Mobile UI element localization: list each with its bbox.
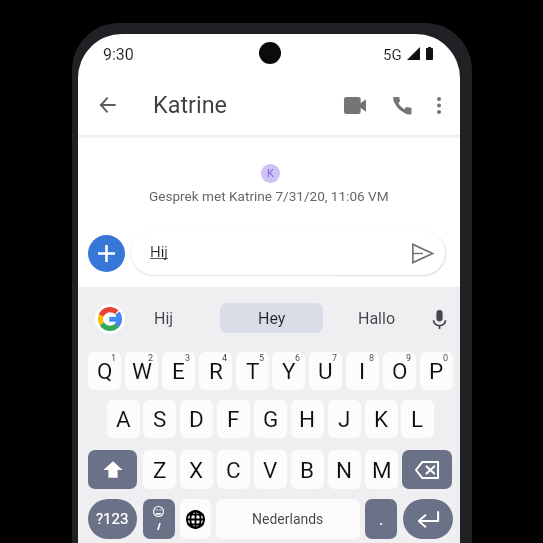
button[interactable]: Shift [88,450,137,489]
button[interactable]: M [365,450,398,489]
button[interactable]: C [217,450,250,489]
button[interactable]: O [383,352,416,390]
staticText: N [336,457,353,483]
staticText: I [359,358,366,384]
button[interactable]: Google [95,304,125,334]
staticText: Hey [258,309,286,328]
staticText: U [318,358,333,384]
button[interactable]: Nederlands [216,499,360,539]
staticText: C [226,457,241,483]
button[interactable]: P [420,352,453,390]
button[interactable]: Call [380,83,424,127]
staticText: 0 [443,353,449,364]
staticText: A [116,406,131,432]
button[interactable]: T [236,352,269,390]
button[interactable]: Video call [333,83,377,127]
staticText: 4 [222,353,228,364]
button[interactable]: G [254,400,287,438]
button[interactable]: N [328,450,361,489]
staticText: Z [153,457,167,483]
button[interactable]: Z [143,450,176,489]
staticText: Q [97,358,113,384]
staticText: O [392,358,408,384]
staticText: X [189,457,204,483]
button[interactable]: Hij [131,231,445,275]
button[interactable]: U [309,352,342,390]
button[interactable]: Hey [220,303,323,333]
staticText: Hij [150,243,168,261]
staticText: Hallo [358,309,396,328]
staticText: K [267,167,274,180]
staticText: 5G [383,46,402,64]
button[interactable]: Emoji [143,499,175,539]
staticText: R [209,358,223,384]
button[interactable]: Hij [134,303,194,333]
staticText: G [263,406,279,432]
staticText: 9:30 [103,45,134,64]
staticText: 2 [148,353,154,364]
staticText: 8 [369,353,375,364]
button[interactable]: Enter [403,499,453,539]
staticText: 3 [185,353,191,364]
button[interactable]: H [291,400,324,438]
staticText: D [189,406,204,432]
staticText: B [300,457,315,483]
staticText: J [338,406,351,432]
staticText: Nederlands [252,511,324,527]
staticText: F [227,406,240,432]
staticText: H [299,406,316,432]
staticText: 9 [406,353,412,364]
staticText: Y [282,358,296,384]
button[interactable]: Q [88,352,121,390]
button[interactable]: I [346,352,379,390]
button[interactable]: B [291,450,324,489]
staticText: . [379,509,384,529]
staticText: L [411,406,424,432]
button[interactable]: V [254,450,287,489]
button[interactable]: J [328,400,361,438]
staticText: Gesprek met Katrine 7/31/20, 11:06 VM [149,188,389,204]
staticText: 7 [332,353,338,364]
staticText: P [429,358,444,384]
staticText: 6 [295,353,301,364]
button[interactable]: ?123 [88,499,137,539]
button[interactable]: Y [272,352,305,390]
button[interactable]: A [107,400,140,438]
button[interactable]: F [217,400,250,438]
staticText: T [246,358,260,384]
button[interactable]: W [125,352,158,390]
button[interactable]: E [162,352,195,390]
button[interactable]: Back [85,83,129,127]
staticText: K [374,406,389,432]
button[interactable]: D [180,400,213,438]
staticText: Hij [154,309,174,328]
staticText: V [263,457,278,483]
button[interactable]: Voice input [424,304,454,334]
button[interactable]: Backspace [402,450,452,489]
button[interactable]: . [365,499,397,539]
button[interactable]: X [180,450,213,489]
staticText: W [132,358,152,384]
button[interactable]: More options [417,83,460,127]
button[interactable]: Hallo [342,303,412,333]
staticText: E [172,358,185,384]
staticText: Katrine [153,91,227,118]
button[interactable]: Send [407,238,437,268]
button[interactable]: S [143,400,176,438]
button[interactable]: L [401,400,434,438]
staticText: M [372,457,392,483]
button[interactable]: Add attachment [88,235,125,272]
staticText: 5 [259,353,265,364]
staticText: S [153,406,167,432]
button[interactable]: Change language [180,499,211,539]
staticText: ?123 [96,510,129,528]
button[interactable]: R [199,352,232,390]
staticText: 1 [111,353,117,364]
button[interactable]: K [365,400,398,438]
